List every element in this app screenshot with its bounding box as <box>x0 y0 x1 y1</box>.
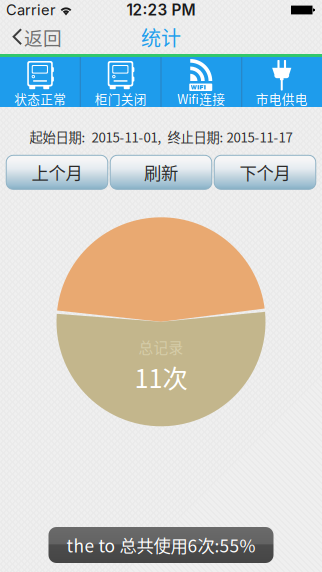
button[interactable]: 上个月 <box>6 155 108 189</box>
staticText: 总记录 <box>138 336 183 357</box>
staticText: Wifi连接 <box>177 89 225 108</box>
staticText: 上个月 <box>31 160 82 185</box>
staticText: 返回 <box>24 23 62 50</box>
staticText: 市电供电 <box>256 89 308 108</box>
button[interactable]: Wifi连接 <box>161 57 241 107</box>
staticText: 12:23 PM <box>126 1 195 19</box>
button[interactable]: 状态正常 <box>0 57 80 107</box>
staticText: the to 总共使用6次:55% <box>66 532 255 558</box>
button[interactable]: 柜门关闭 <box>80 57 161 107</box>
staticText: 状态正常 <box>14 89 66 108</box>
button[interactable]: 下个月 <box>214 155 316 189</box>
button[interactable]: 市电供电 <box>241 57 322 107</box>
staticText: 11次 <box>134 359 187 395</box>
staticText: Carrier <box>6 1 56 19</box>
button[interactable]: 返回 <box>0 20 70 54</box>
button[interactable]: 刷新 <box>110 155 212 189</box>
staticText: 下个月 <box>239 160 290 185</box>
staticText: 刷新 <box>144 160 178 185</box>
staticText: 起始日期: 2015-11-01, 终止日期: 2015-11-17 <box>29 127 292 146</box>
staticText: 柜门关闭 <box>95 89 147 108</box>
staticText: 统计 <box>141 22 181 51</box>
